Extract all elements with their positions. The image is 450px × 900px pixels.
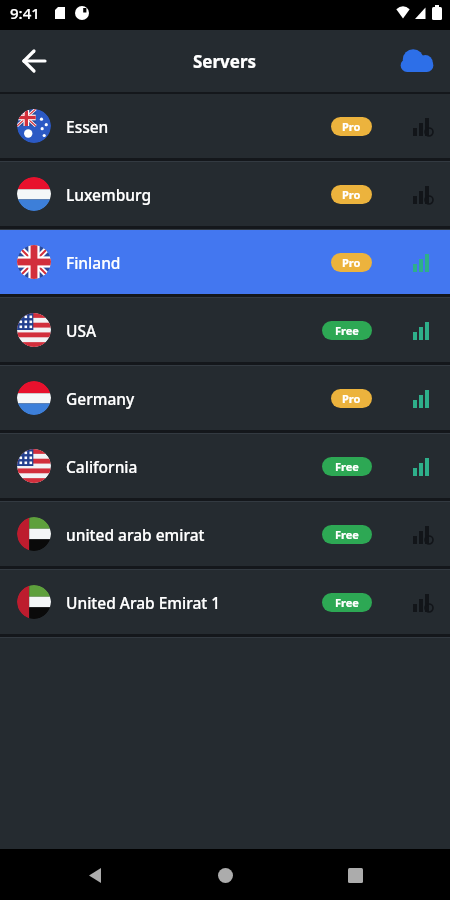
staticText: Free — [335, 595, 359, 610]
button[interactable]: Pro — [331, 253, 372, 272]
button[interactable]: Germany — [0, 366, 450, 430]
staticText: United Arab Emirat 1 — [66, 592, 221, 613]
staticText: Servers — [193, 50, 257, 73]
button[interactable]: USA — [0, 298, 450, 362]
button[interactable]: Luxemburg — [0, 162, 450, 226]
staticText: Pro — [342, 255, 361, 270]
button[interactable]: Free — [322, 457, 372, 476]
staticText: Finland — [66, 252, 121, 273]
button[interactable]: united arab emirat — [0, 502, 450, 566]
button[interactable]: Finland — [0, 230, 450, 294]
staticText: Luxemburg — [66, 184, 152, 205]
button[interactable]: Pro — [331, 185, 372, 204]
button[interactable]: Pro — [331, 117, 372, 136]
button[interactable]: United Arab Emirat 1 — [0, 570, 450, 634]
staticText: Pro — [342, 187, 361, 202]
button[interactable] — [14, 41, 54, 81]
button[interactable]: California — [0, 434, 450, 498]
button[interactable]: Essen — [0, 94, 450, 158]
button[interactable]: Free — [322, 593, 372, 612]
button[interactable] — [396, 40, 438, 82]
staticText: California — [66, 456, 138, 477]
button[interactable] — [200, 850, 250, 900]
staticText: Free — [335, 459, 359, 474]
button[interactable]: Free — [322, 525, 372, 544]
staticText: 9:41 — [10, 3, 40, 23]
staticText: Essen — [66, 116, 109, 137]
staticText: Germany — [66, 388, 135, 409]
staticText: united arab emirat — [66, 524, 205, 545]
staticText: Pro — [342, 391, 361, 406]
staticText: Free — [335, 323, 359, 338]
button[interactable] — [70, 850, 120, 900]
button[interactable] — [330, 850, 380, 900]
staticText: USA — [66, 320, 97, 341]
staticText: Pro — [342, 119, 361, 134]
button[interactable]: Pro — [331, 389, 372, 408]
staticText: Free — [335, 527, 359, 542]
button[interactable]: Free — [322, 321, 372, 340]
